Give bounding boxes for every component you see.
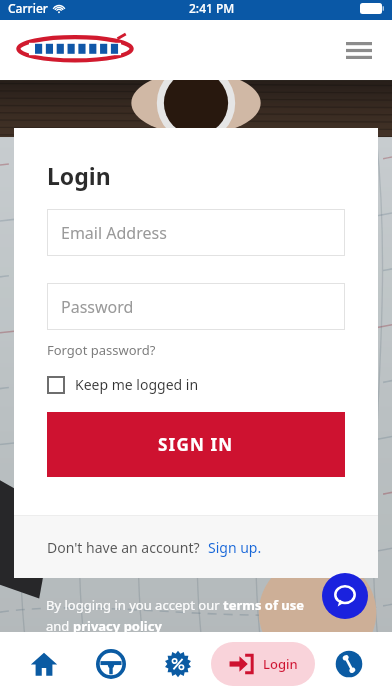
staticText: privacy policy (73, 617, 162, 635)
button[interactable]: Sign up. (208, 538, 262, 557)
button[interactable]: Offers (144, 632, 211, 696)
button[interactable]: SIGN IN (47, 412, 345, 477)
staticText: 2:41 PM (189, 0, 235, 16)
staticText: By logging in you accept our (46, 596, 223, 614)
button[interactable]: Autorent home (16, 30, 134, 70)
button[interactable]: Menu (342, 33, 376, 67)
staticText: Carrier (8, 0, 48, 16)
staticText: Don't have an account? (47, 538, 200, 557)
button[interactable]: Call (315, 632, 382, 696)
staticText: Sign up. (208, 538, 262, 557)
staticText: terms of use (223, 596, 305, 614)
button[interactable]: Cars (77, 632, 144, 696)
staticText: Password (61, 296, 134, 318)
button[interactable]: Forgot password? (47, 341, 156, 359)
staticText: Forgot password? (47, 341, 156, 359)
staticText: Login (47, 160, 111, 191)
button[interactable]: Email Address (47, 209, 345, 256)
staticText: Keep me logged in (75, 375, 199, 394)
button[interactable]: Login (211, 642, 315, 686)
button[interactable]: terms of use (223, 596, 305, 614)
button[interactable]: Password (47, 283, 345, 330)
staticText: Login (263, 655, 298, 673)
staticText: Email Address (61, 222, 167, 244)
staticText: and (46, 617, 73, 635)
button[interactable]: Chat support (322, 573, 368, 619)
button[interactable]: Keep me logged in (47, 375, 199, 394)
button[interactable]: Home (10, 632, 77, 696)
staticText: SIGN IN (158, 433, 234, 456)
button[interactable]: privacy policy (73, 617, 162, 635)
